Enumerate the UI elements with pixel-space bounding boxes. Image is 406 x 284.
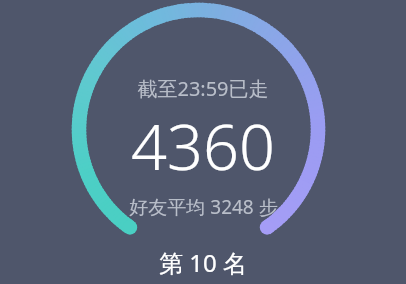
staticText: 4360 [131,103,275,189]
button[interactable]: Daily step ring, 4360 steps [0,0,406,284]
staticText: 好友平均 3248 步 [129,194,278,220]
staticText: 截至23:59已走 [137,75,269,102]
staticText: 第 10 名 [159,246,247,279]
